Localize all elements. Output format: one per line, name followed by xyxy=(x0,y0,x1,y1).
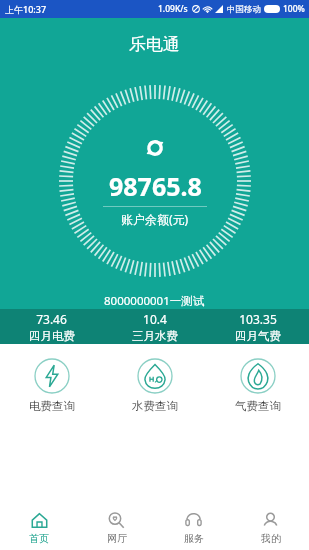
staticText: 我的 xyxy=(261,532,281,545)
button[interactable]: 水费查询 xyxy=(103,358,206,413)
button[interactable]: 73.46 xyxy=(0,309,103,344)
staticText: 中国移动 xyxy=(227,4,261,15)
button[interactable]: 网厅 xyxy=(78,505,155,550)
staticText: 四月气费 xyxy=(235,329,281,343)
staticText: 100% xyxy=(283,3,305,15)
staticText: 电费查询 xyxy=(29,399,75,413)
staticText: 乐电通 xyxy=(129,34,180,55)
staticText: 73.46 xyxy=(36,311,67,327)
staticText: 98765.8 xyxy=(109,169,202,203)
button[interactable]: 电费查询 xyxy=(0,358,103,413)
button[interactable]: 10.4 xyxy=(103,309,206,344)
button[interactable]: 103.35 xyxy=(206,309,309,344)
staticText: 服务 xyxy=(184,532,204,545)
staticText: 气费查询 xyxy=(235,399,281,413)
staticText: 三月水费 xyxy=(132,329,178,343)
staticText: 上午10:37 xyxy=(5,3,47,15)
staticText: 账户余额(元) xyxy=(121,211,189,227)
button[interactable]: 气费查询 xyxy=(206,358,309,413)
staticText: 网厅 xyxy=(107,532,127,545)
staticText: 103.35 xyxy=(239,311,277,327)
button[interactable]: 服务 xyxy=(155,505,232,550)
staticText: 1.09K/s xyxy=(158,3,188,15)
button[interactable]: 我的 xyxy=(232,505,309,550)
button[interactable]: 刷新余额 xyxy=(142,135,168,161)
staticText: 10.4 xyxy=(143,311,167,327)
staticText: 8000000001一测试 xyxy=(104,293,205,309)
button[interactable]: 首页 xyxy=(0,505,78,550)
staticText: 水费查询 xyxy=(132,399,178,413)
staticText: 首页 xyxy=(29,532,49,545)
staticText: 四月电费 xyxy=(29,329,75,343)
